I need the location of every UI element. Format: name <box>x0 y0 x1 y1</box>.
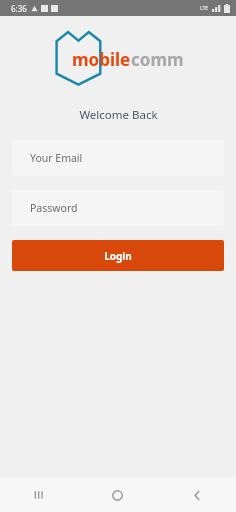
staticText: LTE <box>200 5 209 12</box>
staticText: mobile <box>72 48 131 71</box>
staticText: 6:36 <box>11 3 27 14</box>
staticText: Login <box>104 249 132 263</box>
button[interactable]: Recent apps <box>0 478 78 512</box>
button[interactable]: Your Email <box>12 140 224 176</box>
button[interactable]: Home <box>78 478 157 512</box>
button[interactable]: Login <box>12 240 224 271</box>
staticText: Your Email <box>30 151 83 165</box>
button[interactable]: Password <box>12 190 224 226</box>
staticText: Welcome Back <box>79 107 158 123</box>
staticText: Password <box>30 201 78 215</box>
staticText: comm <box>131 48 184 71</box>
button[interactable]: Back <box>157 478 236 512</box>
